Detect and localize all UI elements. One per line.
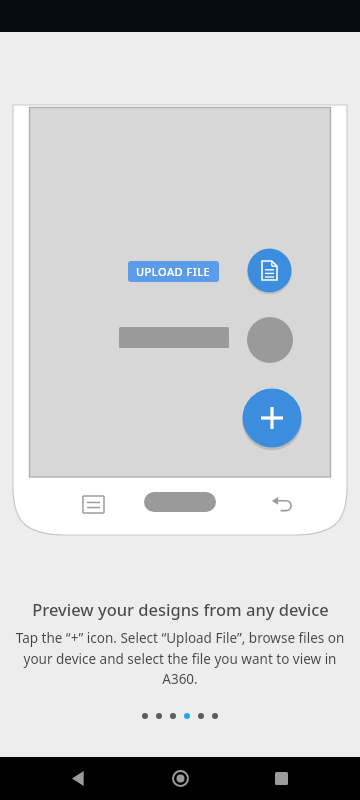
- staticText: Tap the “+” icon. Select “Upload File”, …: [15, 629, 345, 688]
- button[interactable]: Back: [265, 491, 299, 517]
- button[interactable]: [212, 713, 218, 719]
- button[interactable]: Recent apps: [259, 757, 303, 800]
- staticText: Preview your designs from any device: [32, 598, 329, 620]
- button[interactable]: Menu: [76, 491, 110, 517]
- button[interactable]: Back: [57, 757, 101, 800]
- button[interactable]: Add: [242, 388, 302, 448]
- button[interactable]: [156, 713, 162, 719]
- button[interactable]: [142, 713, 148, 719]
- button[interactable]: Home: [158, 757, 202, 800]
- button[interactable]: UPLOAD FILE: [128, 261, 219, 282]
- button[interactable]: [170, 713, 176, 719]
- button[interactable]: Home: [144, 492, 216, 512]
- button[interactable]: [198, 713, 204, 719]
- button[interactable]: [184, 713, 190, 719]
- staticText: UPLOAD FILE: [136, 264, 211, 279]
- button[interactable]: Upload file: [247, 248, 292, 293]
